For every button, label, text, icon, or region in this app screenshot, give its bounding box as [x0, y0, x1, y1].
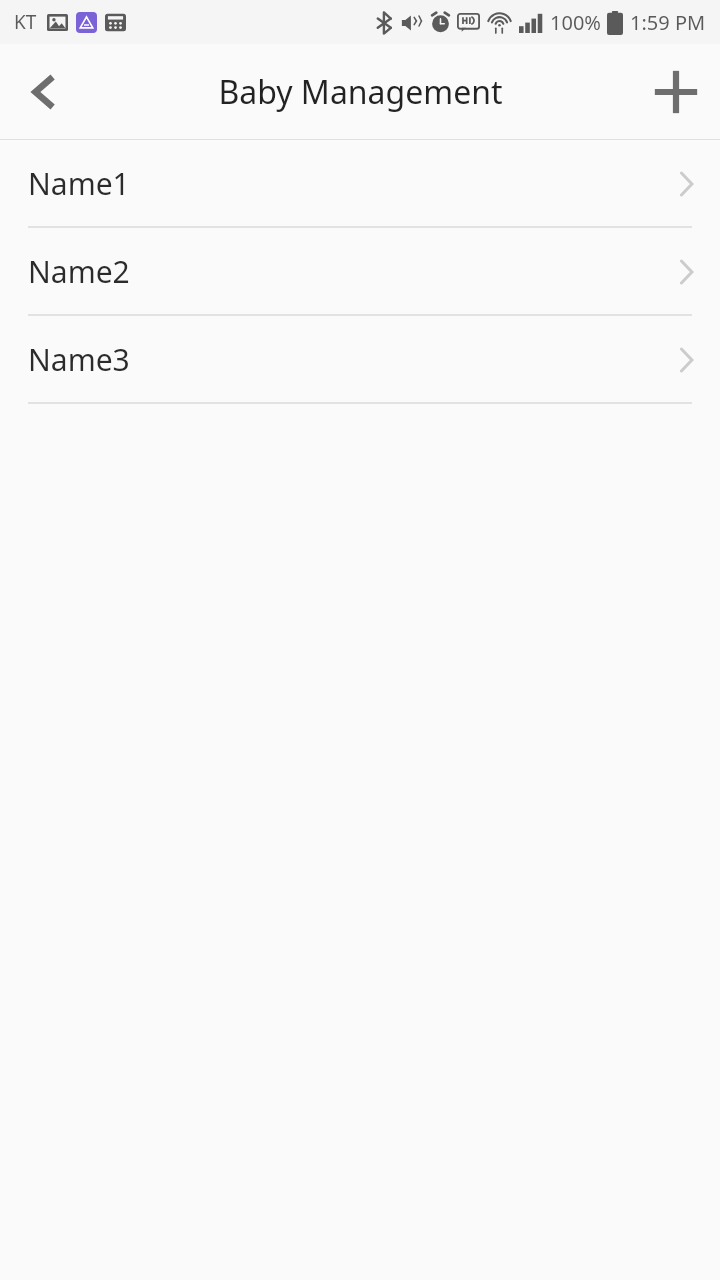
button[interactable]: Back [0, 48, 88, 136]
staticText: Name3 [28, 339, 130, 380]
button[interactable]: Add baby [632, 48, 720, 136]
button[interactable]: Name2 [0, 228, 720, 316]
staticText: KT [14, 9, 37, 35]
button[interactable]: Name3 [0, 316, 720, 404]
staticText: Name1 [28, 163, 130, 204]
staticText: 1:59 PM [630, 9, 706, 36]
staticText: Baby Management [218, 70, 503, 114]
staticText: Name2 [28, 251, 130, 292]
button[interactable]: Name1 [0, 140, 720, 228]
staticText: 100% [550, 9, 601, 36]
